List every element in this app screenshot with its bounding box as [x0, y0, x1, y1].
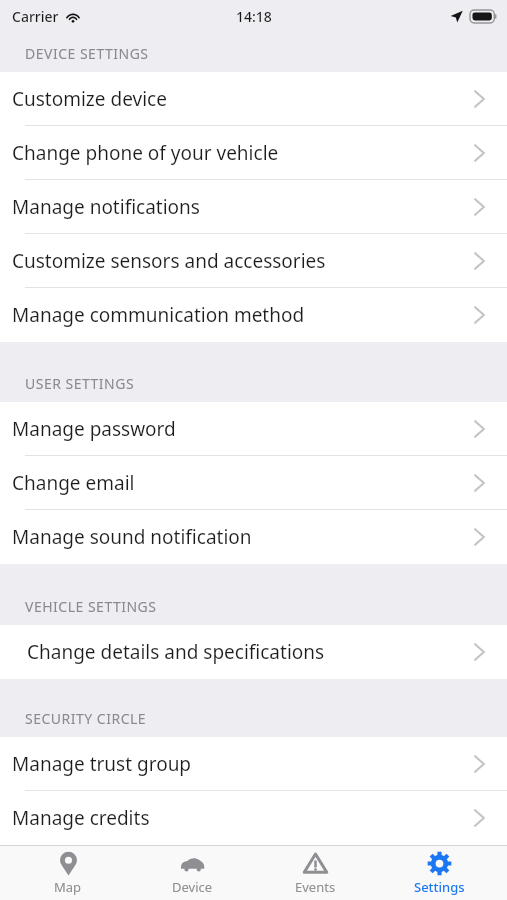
- staticText: Settings: [414, 878, 465, 896]
- button[interactable]: Customize device: [0, 72, 507, 126]
- staticText: Manage password: [12, 416, 176, 442]
- staticText: Change details and specifications: [27, 639, 325, 665]
- button[interactable]: Manage communication method: [0, 288, 507, 342]
- staticText: Manage notifications: [12, 194, 200, 220]
- button[interactable]: Device: [137, 846, 247, 900]
- staticText: Manage communication method: [12, 302, 305, 328]
- button[interactable]: Manage notifications: [0, 180, 507, 234]
- staticText: Events: [295, 878, 336, 896]
- staticText: Customize sensors and accessories: [12, 248, 326, 274]
- staticText: Customize device: [12, 86, 167, 112]
- button[interactable]: Events: [260, 846, 370, 900]
- button[interactable]: Customize sensors and accessories: [0, 234, 507, 288]
- staticText: 14:18: [236, 7, 272, 26]
- staticText: SECURITY CIRCLE: [25, 709, 147, 728]
- button[interactable]: Manage password: [0, 402, 507, 456]
- staticText: Map: [54, 878, 82, 896]
- button[interactable]: Manage sound notification: [0, 510, 507, 564]
- button[interactable]: Manage trust group: [0, 737, 507, 791]
- staticText: VEHICLE SETTINGS: [25, 597, 157, 616]
- button[interactable]: Map: [13, 846, 123, 900]
- button[interactable]: Change email: [0, 456, 507, 510]
- staticText: Carrier: [12, 7, 59, 26]
- staticText: DEVICE SETTINGS: [25, 44, 149, 63]
- staticText: Manage credits: [12, 805, 150, 831]
- button[interactable]: Change details and specifications: [0, 625, 507, 679]
- staticText: Manage trust group: [12, 751, 192, 777]
- staticText: USER SETTINGS: [25, 374, 135, 393]
- staticText: Manage sound notification: [12, 524, 252, 550]
- button[interactable]: Manage credits: [0, 791, 507, 845]
- button[interactable]: Change phone of your vehicle: [0, 126, 507, 180]
- button[interactable]: Settings: [384, 846, 494, 900]
- staticText: Device: [172, 878, 213, 896]
- staticText: Change email: [12, 470, 135, 496]
- staticText: Change phone of your vehicle: [12, 140, 279, 166]
